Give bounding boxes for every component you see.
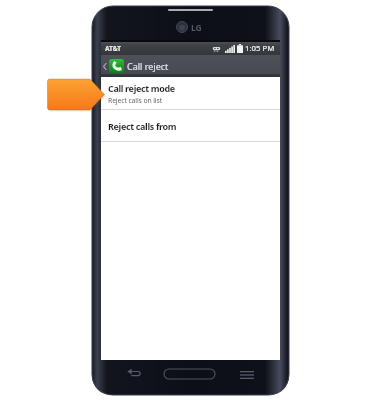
staticText: 1:05 PM [245, 43, 275, 54]
staticText: Reject calls from [108, 120, 177, 132]
button[interactable]: Home [164, 369, 215, 379]
button[interactable]: Back [101, 55, 280, 77]
button[interactable]: Call reject mode [101, 77, 280, 110]
button[interactable]: Menu [240, 371, 254, 379]
button[interactable]: Back [127, 366, 141, 378]
staticText: Call reject mode [108, 82, 175, 94]
staticText: LG [191, 22, 202, 34]
other: Back [103, 63, 107, 70]
staticText: Call reject [127, 60, 169, 72]
button[interactable]: Reject calls from [101, 110, 280, 142]
staticText: Reject calls on list [108, 96, 163, 105]
staticText: AT&T [105, 44, 121, 53]
